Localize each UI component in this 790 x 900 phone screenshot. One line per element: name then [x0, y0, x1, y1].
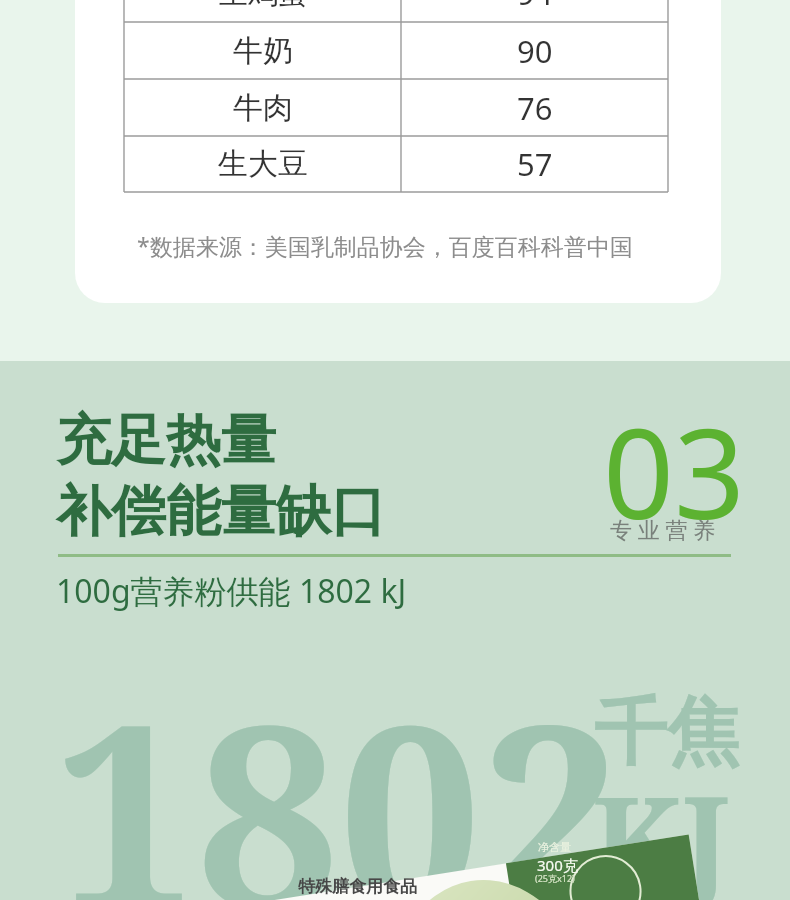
staticText: 专 业 营 养: [610, 514, 716, 544]
other: Product package 300 g: [0, 0, 790, 900]
staticText: KJ: [592, 755, 730, 900]
staticText: 生鸡蛋: [218, 0, 308, 12]
staticText: 76: [517, 87, 553, 129]
staticText: 补偿能量缺口: [56, 477, 386, 546]
staticText: 100g营养粉供能 1802 kJ: [56, 569, 407, 613]
staticText: (25克x12): [535, 872, 575, 884]
staticText: 1802: [54, 638, 624, 900]
staticText: 充足热量: [56, 406, 276, 475]
staticText: 57: [517, 143, 553, 185]
staticText: 03: [603, 386, 745, 555]
staticText: 特殊膳食用食品: [298, 876, 417, 897]
staticText: 牛奶: [233, 32, 293, 70]
staticText: 300克: [537, 855, 578, 875]
staticText: 94: [517, 0, 553, 14]
staticText: 90: [517, 30, 553, 72]
staticText: 千焦: [594, 687, 740, 779]
staticText: 牛肉: [233, 89, 293, 127]
staticText: 净含量: [538, 840, 571, 854]
staticText: *数据来源：美国乳制品协会，百度百科科普中国: [137, 230, 633, 261]
staticText: 生大豆: [218, 145, 308, 183]
button[interactable]: [75, 0, 721, 303]
